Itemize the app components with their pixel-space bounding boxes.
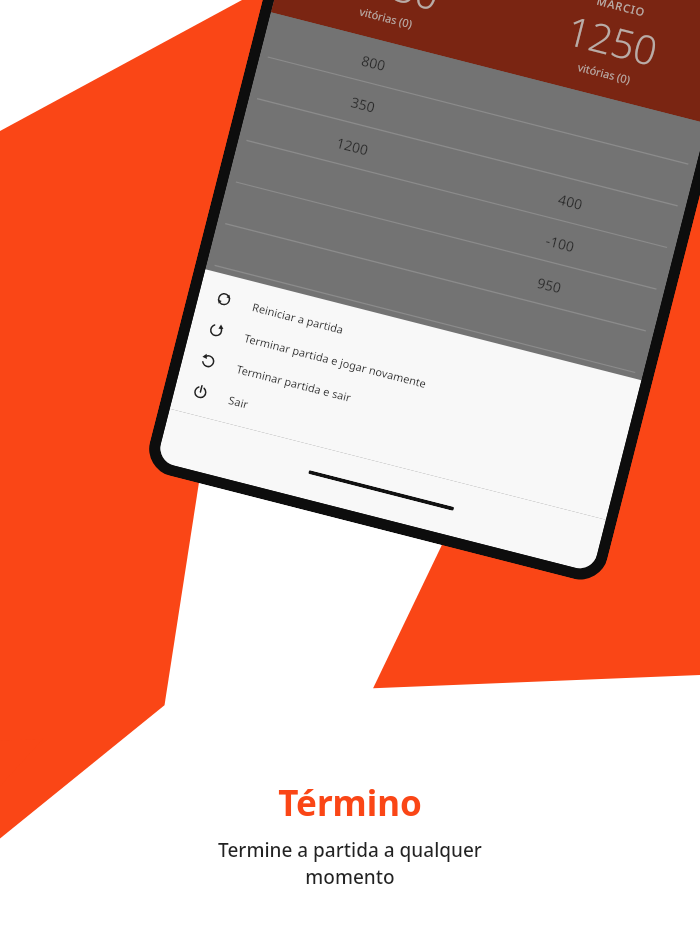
staticText: Terminar partida e jogar novamente <box>243 330 429 391</box>
button[interactable]: Reiniciar a partida <box>195 277 639 419</box>
staticText: 400 <box>556 189 585 214</box>
staticText: 350 <box>349 92 378 117</box>
button[interactable]: KLEBER <box>275 0 514 52</box>
staticText: Término <box>278 779 422 827</box>
button[interactable] <box>207 223 653 375</box>
staticText: vitórias (0) <box>576 59 632 87</box>
button[interactable]: 1200 <box>238 98 685 250</box>
button[interactable]: -100 <box>228 139 675 292</box>
staticText: 2350 <box>343 0 446 22</box>
staticText: 800 <box>360 51 388 75</box>
button[interactable]: Terminar partida e jogar novamente <box>188 308 632 450</box>
staticText: Sair <box>227 392 250 412</box>
staticText: vitórias (0) <box>358 4 414 31</box>
button[interactable]: 800 <box>260 14 700 167</box>
button[interactable]: 950 <box>217 181 664 334</box>
button[interactable]: Sair <box>172 370 616 512</box>
button[interactable]: Terminar partida e sair <box>180 339 624 481</box>
staticText: 950 <box>535 273 564 297</box>
staticText: 1250 <box>561 2 664 77</box>
staticText: MARCIO <box>595 0 647 20</box>
button[interactable]: MARCIO <box>493 0 700 108</box>
staticText: -100 <box>544 231 577 256</box>
staticText: 1200 <box>334 133 371 160</box>
staticText: Termine a partida a qualquer momento <box>130 837 570 890</box>
button[interactable]: 350 <box>249 56 696 209</box>
staticText: Reiniciar a partida <box>251 299 346 337</box>
staticText: Terminar partida e sair <box>235 361 353 405</box>
